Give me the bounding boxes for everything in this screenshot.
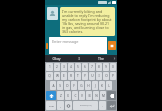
- staticText: I: [78, 56, 80, 61]
- button[interactable]: S: [57, 81, 63, 90]
- button[interactable]: .: [99, 101, 106, 110]
- staticText: 4: [70, 65, 72, 69]
- button[interactable]: V: [79, 91, 85, 100]
- staticText: D: [66, 84, 69, 88]
- staticText: V: [81, 94, 83, 98]
- staticText: N: [95, 94, 98, 98]
- button[interactable]: 3: [61, 63, 67, 71]
- button[interactable]: 6: [82, 63, 88, 71]
- button[interactable]: I: [96, 72, 102, 80]
- button[interactable]: Okay: [45, 55, 68, 62]
- button[interactable]: 7: [89, 63, 95, 71]
- staticText: 7: [91, 65, 93, 69]
- button[interactable]: H: [85, 81, 91, 90]
- button[interactable]: M: [100, 91, 106, 100]
- button[interactable]: Space: [73, 101, 98, 110]
- button[interactable]: I'm currently biking and unable to reply…: [60, 7, 115, 36]
- button[interactable]: 8: [96, 63, 102, 71]
- button[interactable]: F: [71, 81, 77, 90]
- button[interactable]: Q: [46, 72, 53, 80]
- staticText: I: [98, 74, 100, 78]
- button[interactable]: T: [75, 72, 81, 80]
- button[interactable]: Enter: [107, 101, 116, 110]
- button[interactable]: Shift: [46, 91, 56, 100]
- staticText: 1: [49, 65, 51, 69]
- button[interactable]: K: [99, 81, 105, 90]
- button[interactable]: Send: [108, 41, 116, 50]
- staticText: Y: [84, 74, 86, 78]
- button[interactable]: I: [68, 55, 90, 62]
- staticText: L: [108, 84, 110, 88]
- staticText: 6: [84, 65, 86, 69]
- button[interactable]: L: [106, 81, 112, 90]
- staticText: .: [102, 104, 103, 108]
- button[interactable]: 1: [46, 63, 53, 71]
- button[interactable]: A: [50, 81, 56, 90]
- staticText: O: [105, 74, 108, 78]
- button[interactable]: P: [110, 72, 116, 80]
- button[interactable]: 0: [110, 63, 116, 71]
- staticText: English(US): [80, 104, 92, 107]
- staticText: Q: [48, 74, 51, 78]
- staticText: Enter message: [52, 39, 79, 44]
- button[interactable]: 9: [103, 63, 109, 71]
- staticText: Sym: [49, 104, 54, 107]
- button[interactable]: Y: [82, 72, 88, 80]
- button[interactable]: 5: [75, 63, 81, 71]
- button[interactable]: G: [78, 81, 84, 90]
- button[interactable]: Emoji: [65, 101, 72, 110]
- staticText: F: [73, 84, 75, 88]
- button[interactable]: R: [68, 72, 74, 80]
- button[interactable]: U: [89, 72, 95, 80]
- staticText: 5: [77, 65, 79, 69]
- button[interactable]: O: [103, 72, 109, 80]
- staticText: ,: [60, 104, 61, 108]
- button[interactable]: Attach: [46, 43, 48, 49]
- staticText: I'm currently biking and unable to reply…: [62, 9, 113, 34]
- button[interactable]: D: [64, 81, 70, 90]
- button[interactable]: 2: [54, 63, 60, 71]
- button[interactable]: Sym: [46, 101, 56, 110]
- button[interactable]: W: [54, 72, 60, 80]
- staticText: W: [56, 74, 59, 78]
- staticText: G: [80, 84, 83, 88]
- staticText: 0: [112, 65, 114, 69]
- button[interactable]: J: [92, 81, 98, 90]
- staticText: 2: [56, 65, 58, 69]
- button[interactable]: Enter message: [49, 37, 107, 54]
- staticText: Okay: [52, 56, 61, 61]
- staticText: T: [77, 74, 79, 78]
- staticText: X: [67, 94, 69, 98]
- button[interactable]: Z: [57, 91, 64, 100]
- staticText: U: [91, 74, 94, 78]
- button[interactable]: C: [72, 91, 78, 100]
- button[interactable]: ,: [57, 101, 64, 110]
- button[interactable]: X: [65, 91, 71, 100]
- staticText: B: [88, 94, 91, 98]
- button[interactable]: 4: [68, 63, 74, 71]
- staticText: H: [87, 84, 90, 88]
- button[interactable]: N: [93, 91, 99, 100]
- button[interactable]: More suggestions: [112, 55, 117, 62]
- button[interactable]: Backspace: [107, 91, 116, 100]
- staticText: 8: [98, 65, 100, 69]
- staticText: A: [52, 84, 55, 88]
- staticText: 9: [105, 65, 107, 69]
- staticText: Z: [60, 94, 62, 98]
- staticText: 3: [63, 65, 65, 69]
- button[interactable]: E: [61, 72, 67, 80]
- button[interactable]: B: [86, 91, 92, 100]
- staticText: J: [95, 84, 96, 88]
- staticText: M: [102, 94, 105, 98]
- staticText: R: [70, 74, 72, 78]
- staticText: The: [98, 56, 104, 61]
- button[interactable]: Contact avatar: [47, 7, 58, 20]
- staticText: E: [63, 74, 65, 78]
- staticText: S: [59, 84, 61, 88]
- staticText: P: [112, 74, 114, 78]
- staticText: K: [101, 84, 103, 88]
- button[interactable]: The: [90, 55, 112, 62]
- staticText: C: [74, 94, 77, 98]
